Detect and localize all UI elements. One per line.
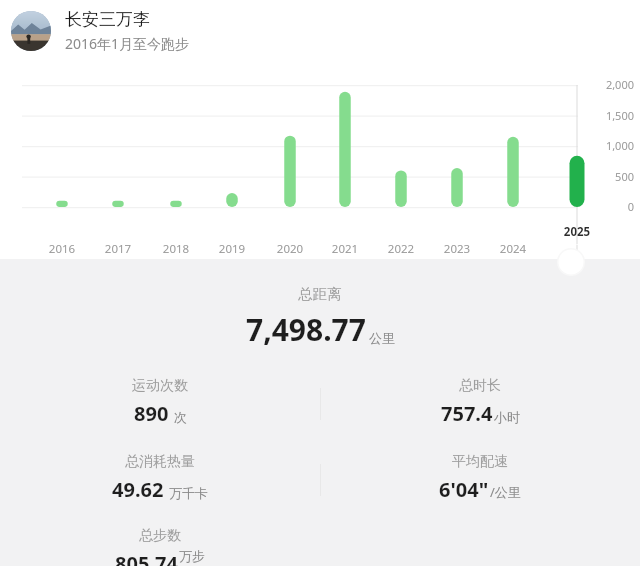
staticText: 2021 [319,241,371,257]
staticText: 总步数 [139,527,181,545]
staticText: 2023 [431,241,483,257]
button[interactable]: 2023 [431,241,483,257]
staticText: 6'04" [439,476,489,503]
staticText: 2016年1月至今跑步 [65,34,190,53]
button[interactable]: 2021 [319,241,371,257]
button[interactable]: 平均配速 [320,453,640,503]
button[interactable]: 2025 [551,224,603,240]
staticText: 805.74 [115,550,178,566]
staticText: 2020 [264,241,316,257]
staticText: /公里 [490,483,521,501]
staticText: 7,498.77 [246,309,366,350]
staticText: 1,000 [586,138,634,153]
staticText: 2025 [551,224,603,240]
staticText: 万千卡 [169,485,208,501]
staticText: 公里 [369,330,395,346]
staticText: 长安三万李 [65,9,150,30]
staticText: 757.4 [441,400,493,427]
staticText: 总消耗热量 [125,453,195,471]
staticText: 500 [586,169,634,184]
staticText: 2018 [150,241,202,257]
button[interactable]: 2024 [487,241,539,257]
staticText: 2024 [487,241,539,257]
button[interactable]: 总时长 [320,377,640,427]
button[interactable]: 2019 [206,241,258,257]
staticText: 平均配速 [452,453,508,471]
button[interactable]: 总步数 [0,527,320,566]
staticText: 运动次数 [132,377,188,395]
button[interactable]: 长安三万李 [0,0,640,62]
staticText: 49.62 [112,476,164,503]
staticText: 2019 [206,241,258,257]
button[interactable]: 2022 [375,241,427,257]
button[interactable]: 2017 [92,241,144,257]
staticText: 总距离 [298,285,342,303]
staticText: 890 [134,400,169,427]
staticText: 万步 [179,548,205,564]
staticText: 2016 [36,241,88,257]
staticText: 1,500 [586,108,634,123]
staticText: 2017 [92,241,144,257]
staticText: 次 [174,409,187,425]
staticText: 2022 [375,241,427,257]
staticText: 小时 [494,409,520,425]
button[interactable]: 总消耗热量 [0,453,320,503]
button[interactable]: 运动次数 [0,377,320,427]
button[interactable]: 2016 [36,241,88,257]
button[interactable]: Drag handle [534,244,608,278]
staticText: 总时长 [459,377,501,395]
button[interactable]: 2020 [264,241,316,257]
staticText: 0 [586,199,634,214]
button[interactable]: 2018 [150,241,202,257]
staticText: 2,000 [586,77,634,92]
